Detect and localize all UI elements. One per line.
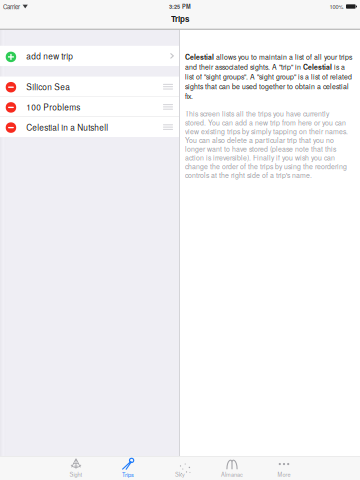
staticText: Sight (69, 470, 82, 478)
button[interactable]: Celestial in a Nutshell (0, 117, 179, 137)
staticText: Silicon Sea (26, 81, 70, 93)
staticText: 100% (329, 2, 343, 10)
staticText: Trips (122, 471, 134, 479)
staticText: add new trip (26, 50, 73, 62)
button[interactable]: Sight (50, 457, 102, 479)
staticText: Trips (171, 13, 189, 25)
button[interactable]: Sky (154, 457, 206, 479)
button[interactable]: add new trip (0, 46, 179, 66)
staticText: Carrier (3, 2, 20, 11)
staticText: More (277, 470, 290, 478)
staticText: 3:25 PM (169, 2, 191, 10)
staticText: This screen lists all the trips you have… (185, 109, 348, 179)
staticText: Sky (175, 470, 185, 478)
button[interactable]: More (258, 457, 310, 479)
button[interactable]: Almanac (206, 457, 258, 479)
button[interactable]: Silicon Sea (0, 77, 179, 97)
staticText: Celestial in a Nutshell (26, 121, 108, 133)
button[interactable]: Trips (102, 457, 154, 479)
button[interactable]: 100 Problems (0, 97, 179, 117)
staticText: Almanac (221, 470, 243, 478)
staticText: 100 Problems (26, 101, 80, 113)
staticText: Celestial allows you to maintain a list … (185, 52, 352, 101)
